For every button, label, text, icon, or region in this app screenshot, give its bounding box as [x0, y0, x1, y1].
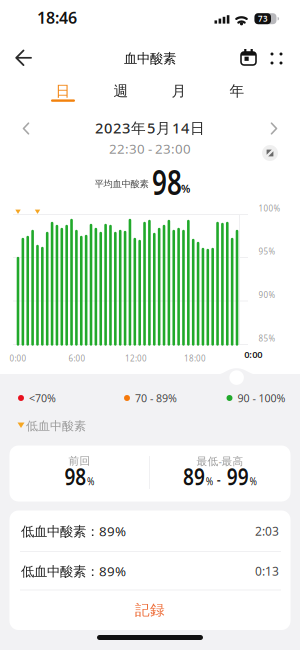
- staticText: 6:00: [68, 353, 85, 364]
- staticText: 90%: [258, 290, 275, 300]
- staticText: 22:30 - 23:00: [109, 140, 191, 157]
- staticText: 18:00: [184, 353, 206, 364]
- staticText: 月: [171, 82, 186, 100]
- button[interactable]: 低血中酸素：89%: [0, 0, 300, 650]
- staticText: 週: [113, 82, 128, 100]
- staticText: 99: [222, 461, 254, 491]
- staticText: 最低-最高: [196, 454, 243, 468]
- staticText: 日: [55, 82, 70, 100]
- staticText: 低血中酸素: [26, 419, 86, 433]
- button[interactable]: 記録: [0, 0, 300, 650]
- button[interactable]: 週: [0, 0, 300, 650]
- staticText: 低血中酸素：89%: [21, 562, 126, 580]
- staticText: 70 - 89%: [135, 391, 177, 405]
- staticText: 98: [61, 461, 87, 491]
- staticText: 12:00: [125, 353, 147, 364]
- staticText: 前回: [68, 454, 90, 467]
- staticText: 平均血中酸素: [94, 178, 148, 190]
- staticText: %: [203, 474, 215, 488]
- button[interactable]: Back: [0, 0, 300, 650]
- button[interactable]: 低血中酸素：89%: [0, 0, 300, 650]
- staticText: %: [181, 181, 190, 196]
- staticText: 90 - 100%: [237, 391, 285, 405]
- button[interactable]: 月: [0, 0, 300, 650]
- staticText: 85%: [258, 333, 275, 344]
- button[interactable]: 日: [0, 0, 300, 650]
- staticText: 2:03: [255, 523, 279, 539]
- staticText: 95%: [258, 246, 275, 257]
- staticText: 18:46: [37, 7, 77, 28]
- button[interactable]: 年: [0, 0, 300, 650]
- button[interactable]: Time slider: [0, 0, 300, 650]
- button[interactable]: Calendar: [0, 0, 300, 650]
- staticText: 記録: [135, 601, 165, 619]
- button[interactable]: Previous day: [0, 0, 300, 650]
- staticText: 73: [258, 13, 268, 24]
- staticText: 年: [229, 82, 244, 100]
- button[interactable]: More: [0, 0, 300, 650]
- staticText: %: [255, 474, 264, 488]
- staticText: 98: [147, 158, 187, 204]
- button[interactable]: Next day: [0, 0, 300, 650]
- staticText: 血中酸素: [124, 50, 176, 67]
- staticText: 89: [176, 461, 202, 491]
- staticText: -: [216, 470, 221, 489]
- staticText: 2023年5月14日: [95, 118, 205, 138]
- staticText: 100%: [258, 203, 280, 214]
- staticText: %: [88, 474, 97, 488]
- staticText: 0:13: [255, 563, 279, 579]
- button[interactable]: Switch view: [0, 0, 300, 650]
- staticText: 低血中酸素：89%: [21, 522, 126, 540]
- staticText: <70%: [29, 391, 56, 405]
- staticText: 0:00: [9, 353, 26, 364]
- staticText: 0:00: [244, 348, 262, 361]
